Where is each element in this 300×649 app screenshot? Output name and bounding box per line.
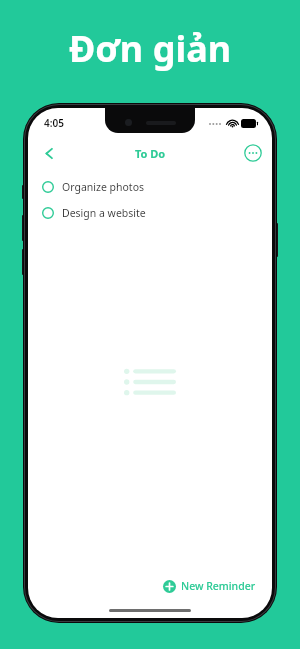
staticText: Organize photos [62, 180, 145, 194]
staticText: New Reminder [181, 579, 256, 593]
button[interactable]: Design a website [28, 200, 272, 226]
staticText: 4:05 [44, 116, 64, 130]
button[interactable]: New Reminder [159, 576, 260, 596]
button[interactable]: More options [242, 142, 264, 164]
button[interactable]: Organize photos [28, 174, 272, 200]
staticText: To Do [135, 146, 166, 161]
staticText: Design a website [62, 206, 146, 220]
staticText: Đơn giản [69, 24, 232, 73]
button[interactable]: Back [36, 140, 62, 166]
